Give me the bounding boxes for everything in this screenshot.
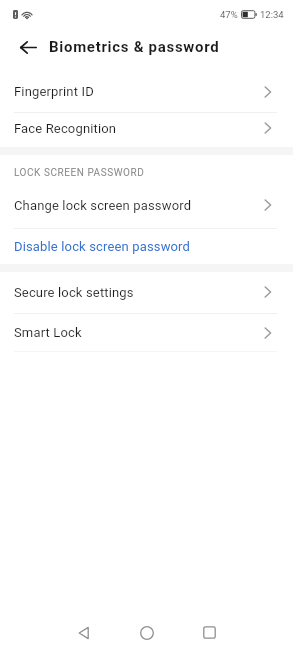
staticText: Disable lock screen password xyxy=(14,239,191,254)
staticText: 47% xyxy=(220,9,238,20)
button[interactable] xyxy=(178,615,241,650)
staticText: Biometrics & password xyxy=(49,38,220,56)
staticText: LOCK SCREEN PASSWORD xyxy=(14,167,145,179)
button[interactable]: Disable lock screen password xyxy=(0,229,293,264)
button[interactable] xyxy=(115,615,178,650)
button[interactable] xyxy=(20,41,37,54)
staticText: Face Recognition xyxy=(14,121,117,136)
button[interactable]: Secure lock settings xyxy=(0,272,293,312)
button[interactable]: Smart Lock xyxy=(0,314,293,351)
staticText: 12:34 xyxy=(260,9,284,20)
button[interactable]: Face Recognition xyxy=(0,113,293,143)
staticText: Change lock screen password xyxy=(14,198,192,213)
button[interactable] xyxy=(52,615,115,650)
staticText: Smart Lock xyxy=(14,325,82,340)
button[interactable]: Change lock screen password xyxy=(0,191,293,219)
staticText: Fingerprint ID xyxy=(14,84,94,99)
button[interactable]: Fingerprint ID xyxy=(0,71,293,112)
staticText: Secure lock settings xyxy=(14,285,134,300)
